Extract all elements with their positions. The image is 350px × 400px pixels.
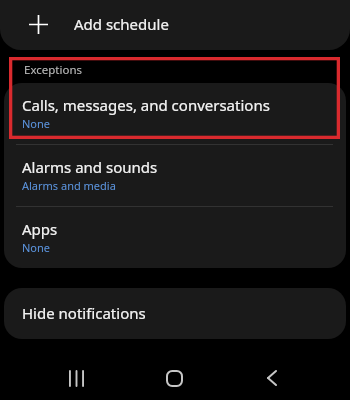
button[interactable]: Recents xyxy=(52,354,100,400)
staticText: Calls, messages, and conversations xyxy=(22,95,270,115)
button[interactable]: Hide notifications xyxy=(4,288,346,339)
staticText: Exceptions xyxy=(24,62,83,78)
staticText: Hide notifications xyxy=(22,303,146,323)
button[interactable]: Apps xyxy=(4,207,346,268)
button[interactable]: Alarms and sounds xyxy=(4,145,346,206)
staticText: Alarms and media xyxy=(22,178,116,193)
staticText: Alarms and sounds xyxy=(22,157,158,177)
button[interactable]: Home xyxy=(150,354,198,400)
staticText: None xyxy=(22,116,51,131)
button[interactable]: Back xyxy=(248,354,296,400)
staticText: Apps xyxy=(22,219,58,239)
staticText: Add schedule xyxy=(74,14,169,34)
button[interactable]: Add schedule xyxy=(0,0,350,50)
staticText: None xyxy=(22,240,51,255)
button[interactable]: Calls, messages, and conversations xyxy=(4,83,346,144)
